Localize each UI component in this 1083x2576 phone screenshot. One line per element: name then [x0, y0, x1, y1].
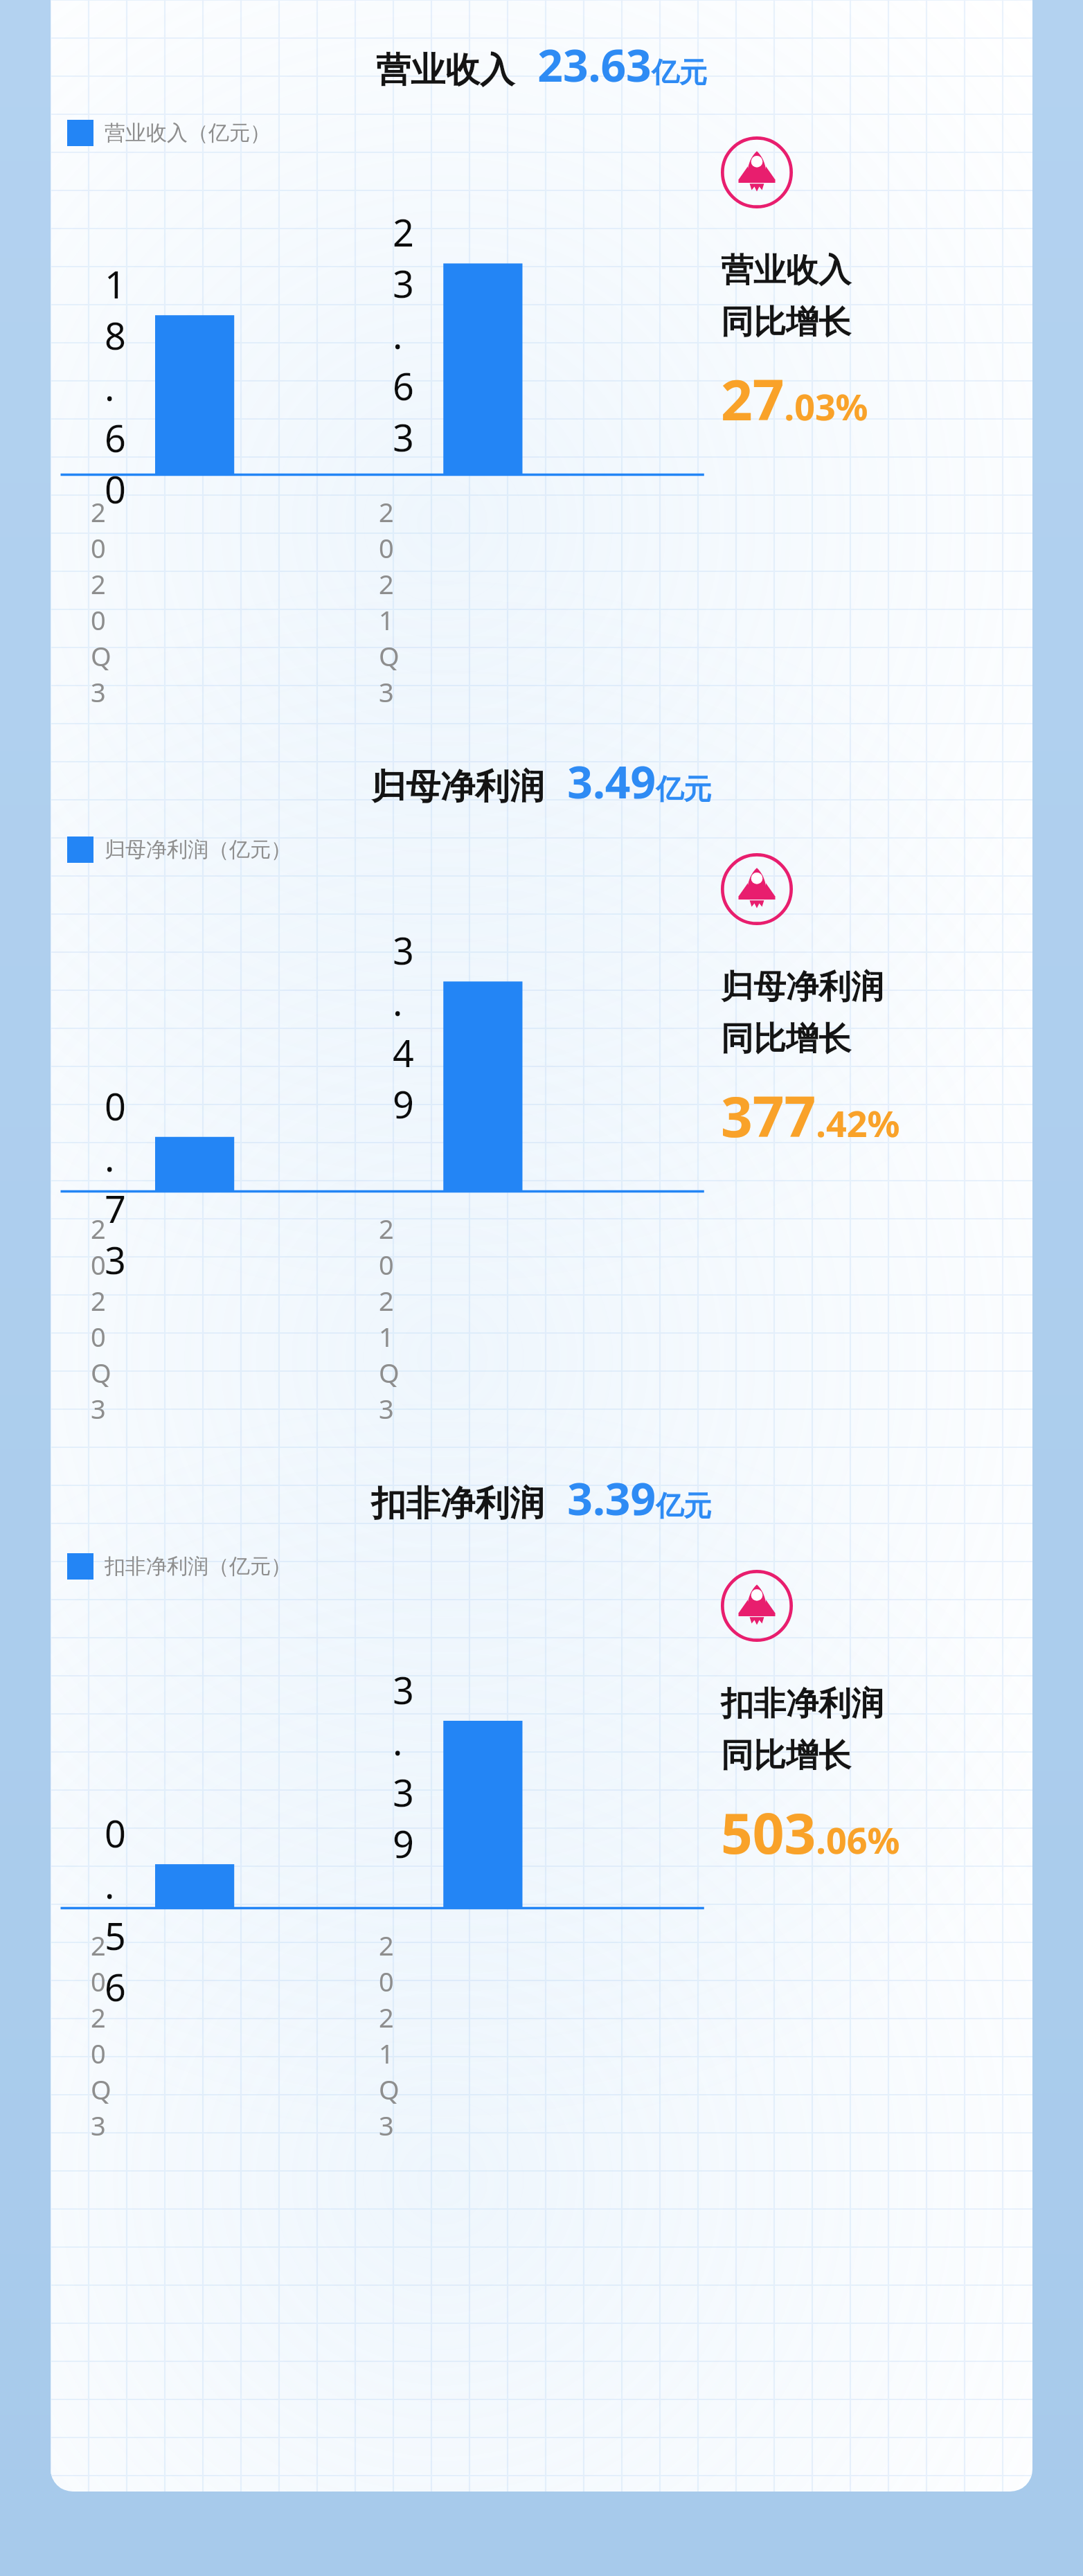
staticText: 扣非净利润 3.39亿元 — [371, 1468, 712, 1528]
button[interactable]: 0.73 — [51, 875, 721, 1263]
button[interactable]: 扣非净利润（亿元） — [67, 1553, 292, 1580]
button[interactable]: 扣非净利润 3.39亿元 — [51, 1468, 1032, 1528]
button[interactable]: 0.56 — [51, 1592, 721, 1980]
staticText: 同比增长 — [721, 302, 851, 343]
staticText: 27.03% — [721, 361, 868, 436]
staticText: 营业收入 — [721, 250, 851, 291]
staticText: 377.42% — [721, 1077, 900, 1153]
staticText: 营业收入（亿元） — [105, 120, 271, 146]
button[interactable]: 归母净利润（亿元） — [67, 837, 292, 863]
staticText: 扣非净利润 — [721, 1683, 884, 1724]
staticText: 同比增长 — [721, 1735, 851, 1776]
button[interactable]: Growth rocket — [721, 853, 793, 925]
button[interactable]: 营业收入（亿元） — [67, 120, 271, 146]
staticText: 同比增长 — [721, 1019, 851, 1059]
staticText: 营业收入 23.63亿元 — [376, 35, 707, 95]
button[interactable]: 营业收入 23.63亿元 — [51, 35, 1032, 95]
button[interactable]: Growth rocket — [721, 1570, 793, 1642]
staticText: 归母净利润 3.49亿元 — [371, 751, 712, 812]
button[interactable]: 18.60 — [51, 159, 721, 546]
button[interactable]: 归母净利润 3.49亿元 — [51, 751, 1032, 812]
staticText: 503.06% — [721, 1794, 900, 1870]
button[interactable]: Growth rocket — [721, 136, 793, 208]
staticText: 归母净利润 — [721, 967, 884, 1008]
staticText: 归母净利润（亿元） — [105, 837, 292, 863]
staticText: 扣非净利润（亿元） — [105, 1553, 292, 1580]
